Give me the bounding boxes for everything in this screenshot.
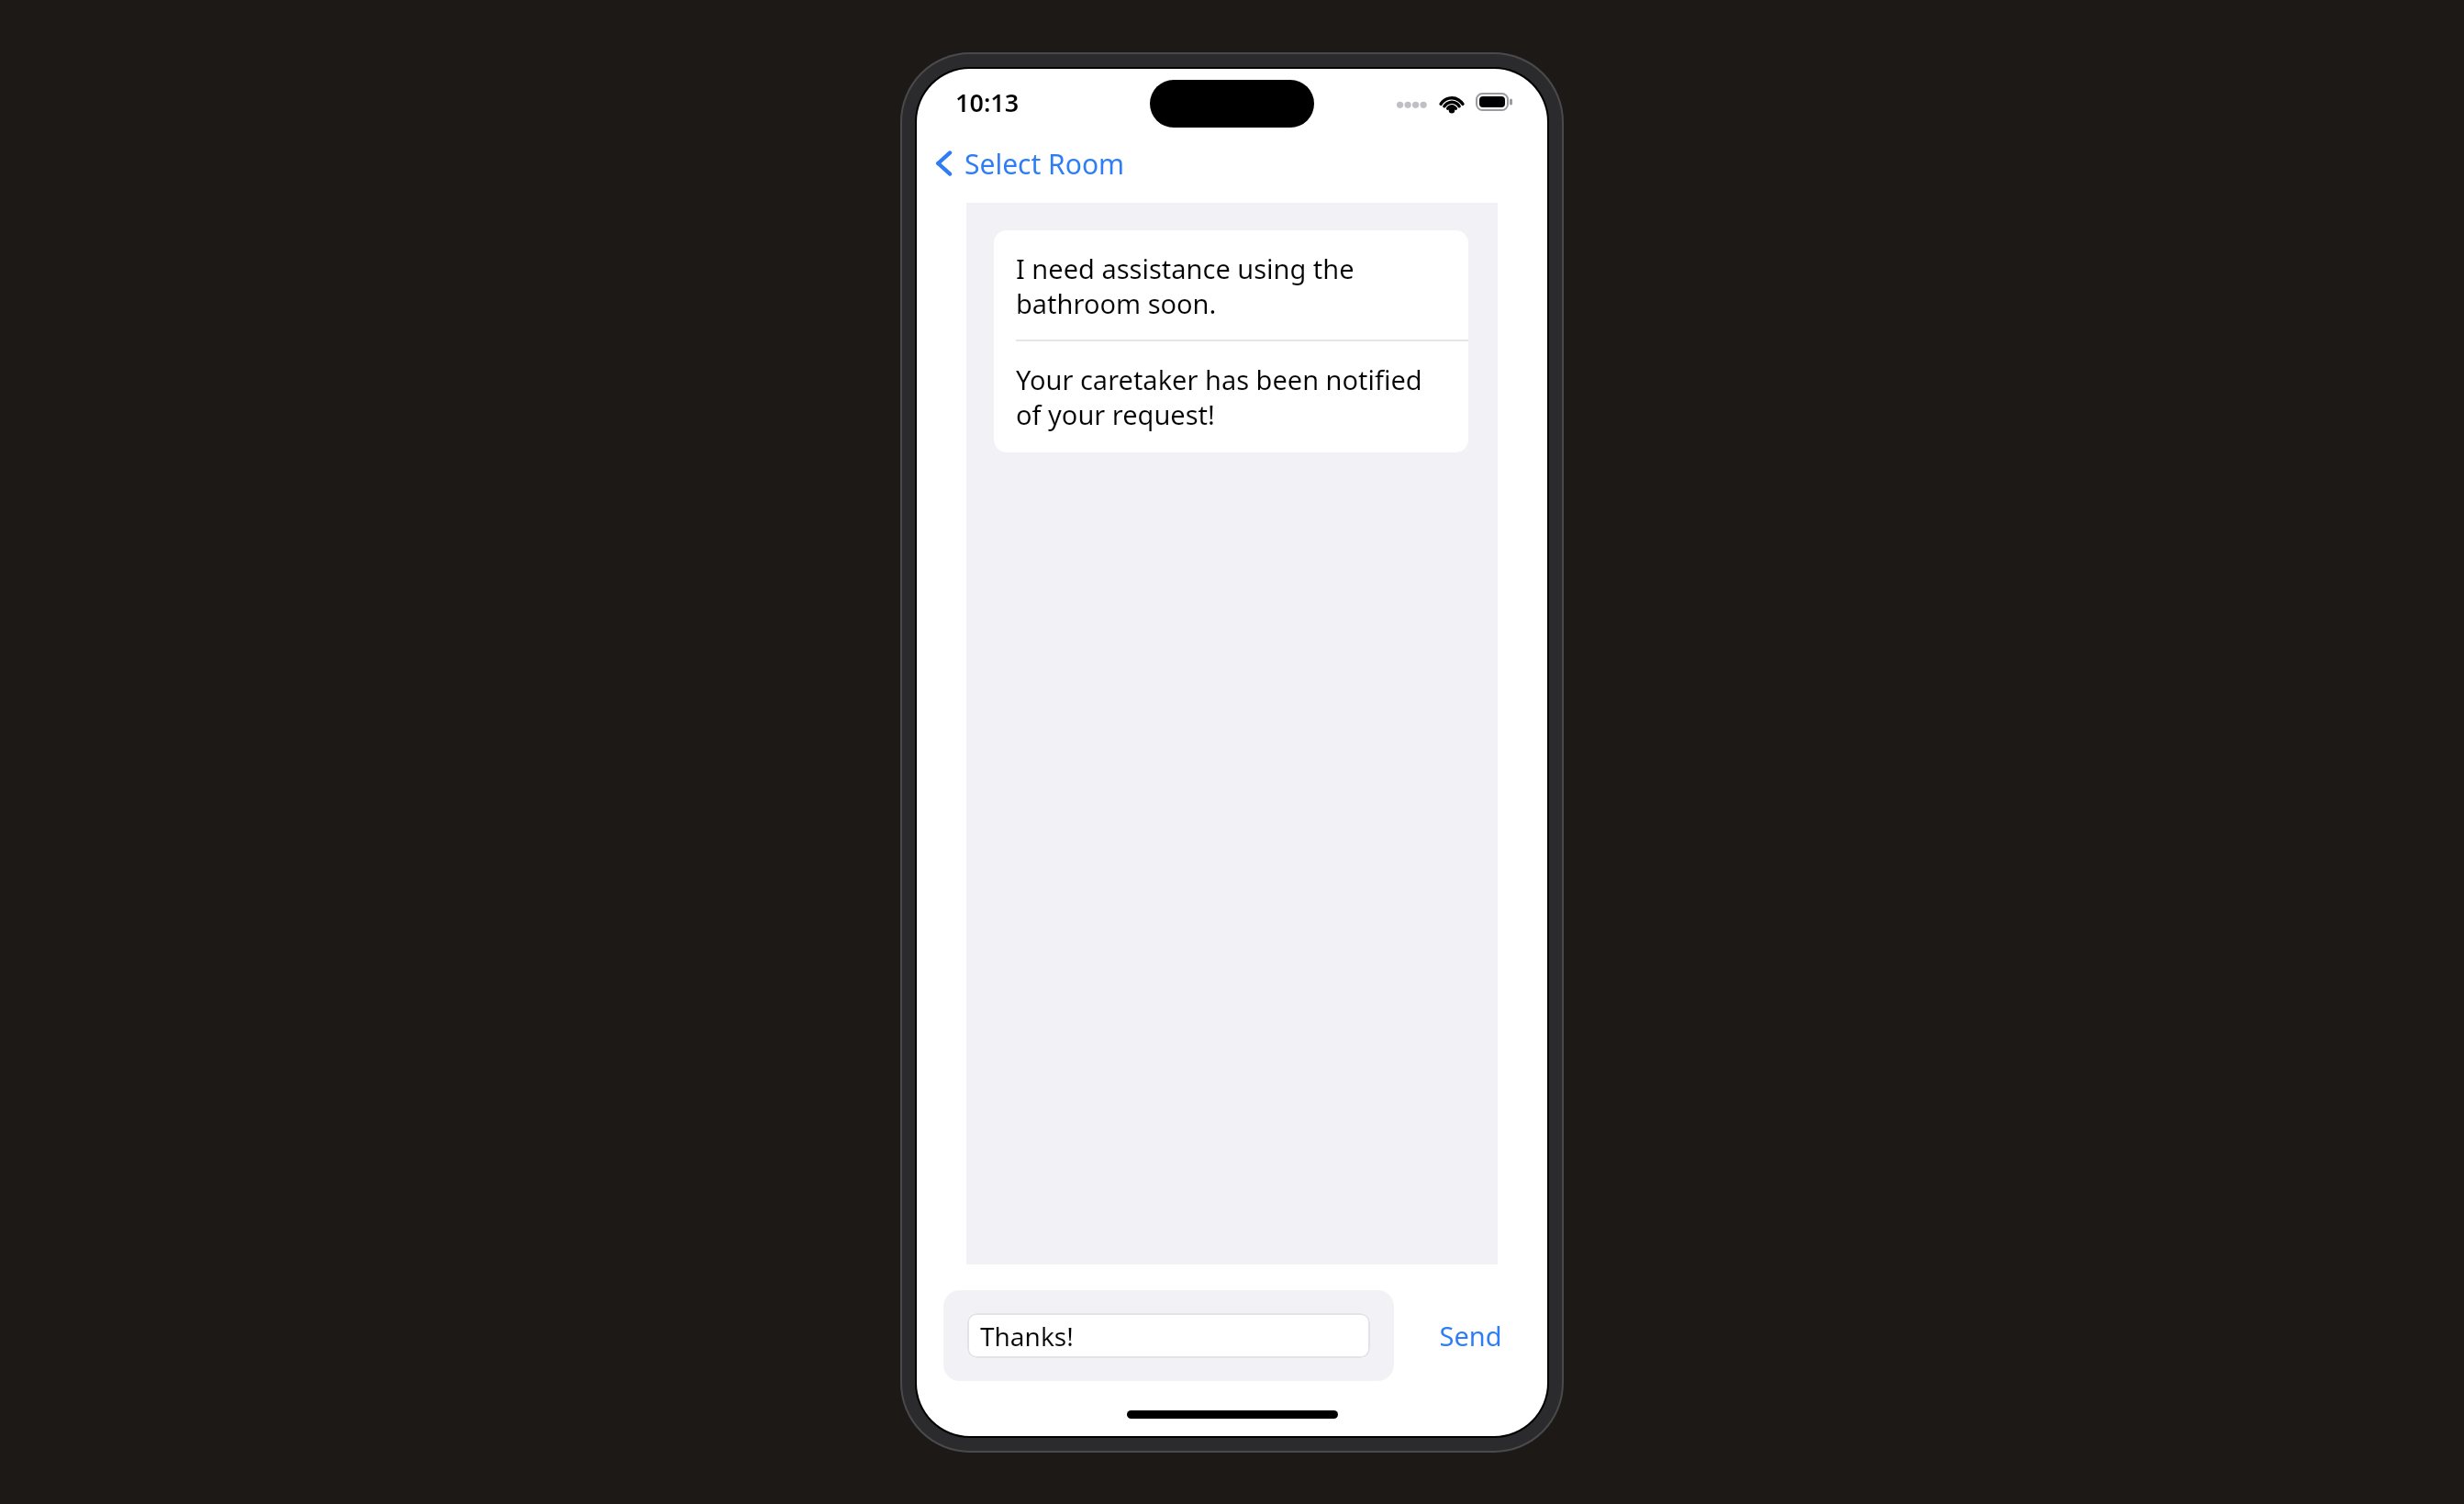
staticText: Select Room (964, 145, 1125, 183)
staticText: 10:13 (955, 85, 1020, 119)
staticText: Your caretaker has been notified of your… (1016, 362, 1454, 432)
staticText: I need assistance using the bathroom soo… (1016, 251, 1450, 321)
button[interactable]: Back (930, 135, 1547, 192)
button[interactable]: I need assistance using the bathroom soo… (994, 230, 1468, 452)
staticText: Send (1439, 1318, 1502, 1354)
other: Back (931, 148, 957, 179)
button[interactable]: Thanks! (967, 1313, 1370, 1358)
staticText: Thanks! (980, 1319, 1074, 1354)
button[interactable]: Send (1394, 1290, 1547, 1381)
